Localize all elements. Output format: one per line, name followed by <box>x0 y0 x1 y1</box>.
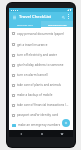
button[interactable]: Open navigation drawer <box>11 14 17 20</box>
staticText: take care of financial transactions (bil… <box>17 103 70 107</box>
staticText: turn on alarm (cancel) <box>17 73 48 77</box>
staticText: passport and/or identity card <box>17 113 59 117</box>
staticText: give holiday address to someone <box>17 63 64 67</box>
staticText: take care of plants and animals <box>17 83 61 87</box>
staticText: Travel CheckList <box>19 14 52 20</box>
button[interactable]: take care of financial transactions (bil… <box>9 100 73 110</box>
button[interactable]: copy personal documents (paper) <box>9 28 73 39</box>
button[interactable]: Back <box>18 131 23 136</box>
button[interactable]: More options <box>66 14 71 19</box>
button[interactable]: Search <box>60 14 66 20</box>
button[interactable]: Add item <box>62 119 70 127</box>
button[interactable]: Home <box>39 131 44 136</box>
staticText: turn off electricity and water <box>17 53 57 57</box>
staticText: get a travel insurance <box>17 43 48 47</box>
staticText: make an emergency numbers <box>18 123 61 127</box>
button[interactable]: turn on alarm (cancel) <box>9 70 73 80</box>
staticText: copy personal documents (paper) <box>17 32 65 36</box>
staticText: make a backup of mobile <box>17 93 53 97</box>
button[interactable]: turn off electricity and water <box>9 50 73 60</box>
button[interactable]: get a travel insurance <box>9 39 73 50</box>
staticText: PACKING LIST <box>17 23 33 26</box>
button[interactable]: give holiday address to someone <box>9 60 73 70</box>
button[interactable]: make an emergency numbers <box>9 120 73 130</box>
button[interactable]: passport and/or identity card <box>9 110 73 120</box>
staticText: PRE-DEPARTURE <box>48 23 67 26</box>
button[interactable]: make a backup of mobile <box>9 90 73 100</box>
button[interactable]: PACKING LIST <box>9 21 41 27</box>
button[interactable]: take care of plants and animals <box>9 80 73 90</box>
button[interactable]: Recent apps <box>59 131 64 136</box>
button[interactable]: PRE-DEPARTURE <box>41 21 73 27</box>
